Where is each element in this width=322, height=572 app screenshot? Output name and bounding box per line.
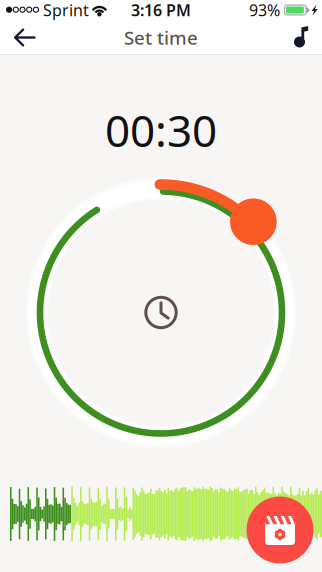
staticText: Sprint	[43, 0, 89, 21]
button[interactable]: Video effects	[246, 496, 313, 563]
button[interactable]: Sound	[281, 20, 322, 55]
staticText: Set time	[124, 25, 198, 50]
staticText: 00:30	[105, 101, 217, 159]
staticText: 3:16 PM	[131, 0, 191, 21]
button[interactable]: Back	[0, 20, 49, 55]
staticText: 93%	[249, 0, 280, 21]
